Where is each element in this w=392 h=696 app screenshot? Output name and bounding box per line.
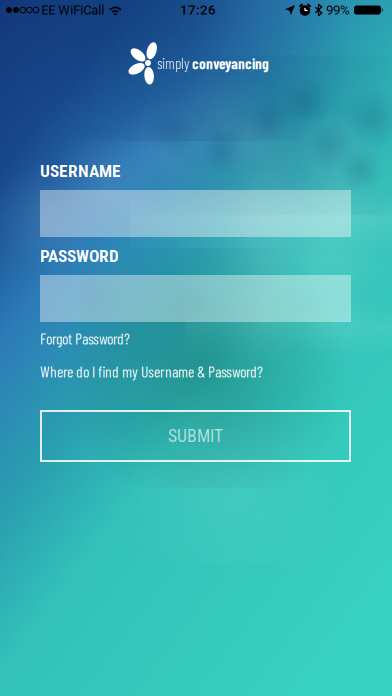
staticText: USERNAME <box>40 161 121 181</box>
secureTextField[interactable]: Password <box>40 283 351 313</box>
staticText: Where do I find my Username & Password? <box>40 362 263 381</box>
button[interactable]: Where do I find my Username & Password? <box>40 362 263 381</box>
staticText: Forgot Password? <box>40 329 130 348</box>
staticText: EE WiFiCall <box>41 2 104 18</box>
staticText: conveyancing <box>192 54 269 72</box>
staticText: 99% <box>326 2 350 18</box>
staticText: simply <box>157 54 189 72</box>
staticText: 17:26 <box>180 2 216 18</box>
staticText: PASSWORD <box>40 246 119 266</box>
staticText: SUBMIT <box>168 426 223 446</box>
textField[interactable]: Username <box>40 198 351 228</box>
button[interactable]: Forgot Password? <box>40 329 130 348</box>
button[interactable]: SUBMIT <box>40 410 351 462</box>
